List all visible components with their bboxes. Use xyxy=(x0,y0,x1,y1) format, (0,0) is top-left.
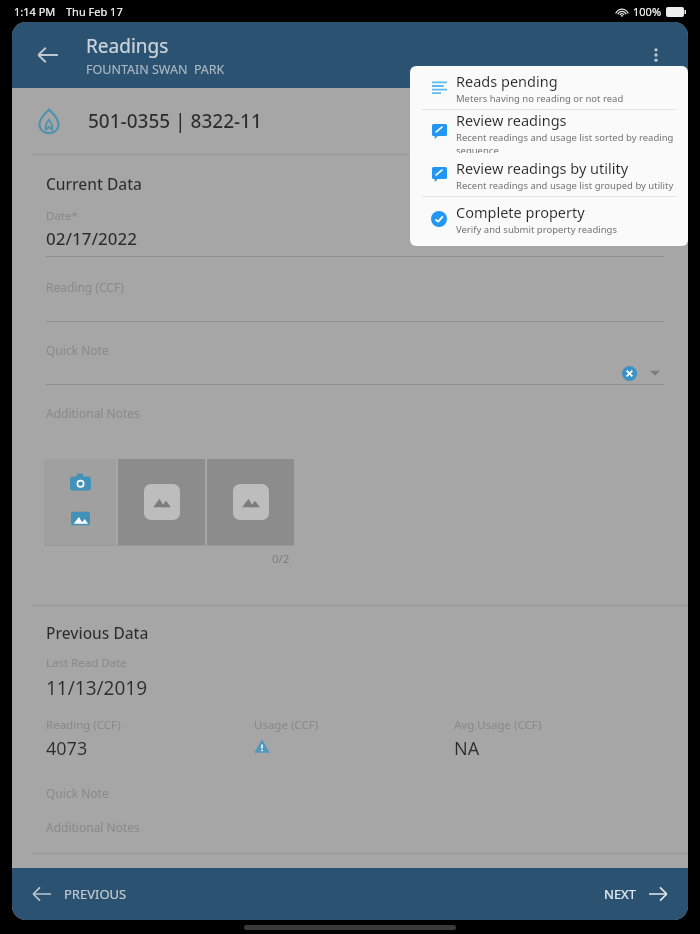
staticText: Review readings xyxy=(456,110,567,130)
staticText: NEXT xyxy=(604,885,636,903)
staticText: Reading (CCF) xyxy=(46,717,121,733)
staticText: Review readings by utility xyxy=(456,158,629,178)
staticText: Quick Note xyxy=(46,342,109,358)
staticText: 0/2 xyxy=(272,551,290,567)
button[interactable]: Take photo xyxy=(67,469,93,495)
staticText: Meters having no reading or not read xyxy=(456,92,624,105)
staticText: Thu Feb 17 xyxy=(66,4,123,19)
button[interactable]: Review readings xyxy=(410,110,688,153)
staticText: 11/13/2019 xyxy=(46,675,148,701)
staticText: Readings xyxy=(86,33,169,59)
staticText: Date* xyxy=(46,208,78,224)
staticText: 100% xyxy=(633,4,662,19)
staticText: Avg.Usage (CCF) xyxy=(454,717,542,733)
staticText: Reading (CCF) xyxy=(46,279,124,295)
button[interactable]: Photo placeholder xyxy=(207,459,294,545)
staticText: Usage (CCF) xyxy=(254,717,319,733)
staticText: Reads pending xyxy=(456,71,558,91)
staticText: 02/17/2022 xyxy=(46,227,137,250)
staticText: Previous Data xyxy=(46,622,149,643)
staticText: PREVIOUS xyxy=(64,885,127,903)
button[interactable]: PREVIOUS xyxy=(22,876,137,912)
button[interactable]: Clear quick note xyxy=(618,362,640,384)
staticText: Quick Note xyxy=(46,785,109,801)
staticText: Recent readings and usage list grouped b… xyxy=(456,179,674,192)
button[interactable]: Photo placeholder xyxy=(118,459,205,545)
staticText: 4073 xyxy=(46,736,88,761)
staticText: Additional Notes xyxy=(46,819,140,835)
staticText: Current Data xyxy=(46,173,142,194)
staticText: Verify and submit property readings xyxy=(456,223,618,236)
button[interactable]: Review readings by utility xyxy=(410,153,688,196)
button[interactable]: More options xyxy=(636,35,676,75)
button[interactable]: Pick from gallery xyxy=(67,505,93,531)
button[interactable]: Reads pending xyxy=(410,66,688,109)
staticText: 1:14 PM xyxy=(14,4,56,19)
staticText: NA xyxy=(454,736,480,761)
button[interactable]: Open quick note list xyxy=(646,364,664,382)
button[interactable]: NEXT xyxy=(594,876,678,912)
staticText: Recent readings and usage list sorted by… xyxy=(456,131,682,153)
button[interactable]: Complete property xyxy=(410,197,688,240)
staticText: FOUNTAIN SWAN PARK xyxy=(86,61,225,78)
staticText: Last Read Date xyxy=(46,655,127,671)
staticText: Additional Notes xyxy=(46,405,140,421)
staticText: Complete property xyxy=(456,202,585,222)
button[interactable]: Back xyxy=(28,35,68,75)
staticText: 501-0355 | 8322-11 xyxy=(88,108,262,134)
